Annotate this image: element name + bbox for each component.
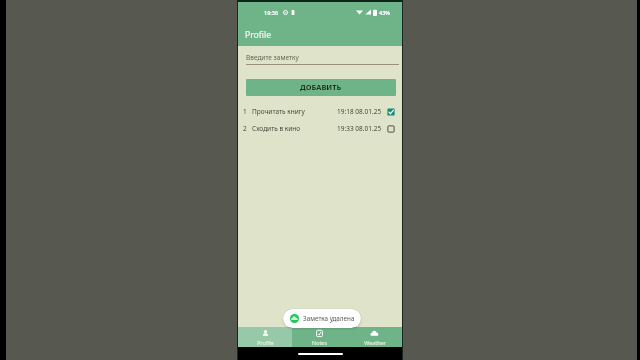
staticText: Weather: [364, 339, 386, 346]
button[interactable]: Заметка удалена: [290, 309, 361, 328]
button[interactable]: Введите заметку: [246, 53, 399, 65]
staticText: 19:18 08.01.25: [337, 107, 382, 116]
button[interactable]: ДОБАВИТЬ: [246, 79, 396, 96]
button[interactable]: Notes tab: [292, 327, 347, 347]
button[interactable]: 1: [243, 103, 396, 120]
button[interactable]: 2: [243, 120, 396, 137]
staticText: Notes: [312, 339, 327, 346]
staticText: Profile: [245, 29, 272, 41]
staticText: Введите заметку: [246, 53, 299, 62]
staticText: 43%: [379, 9, 390, 16]
staticText: 1: [243, 107, 247, 116]
button[interactable]: Weather tab: [347, 327, 402, 347]
staticText: 2: [243, 124, 247, 133]
staticText: Profile: [257, 339, 274, 346]
button[interactable]: Profile tab: [238, 327, 292, 347]
staticText: Прочитать книгу: [252, 107, 305, 116]
staticText: 19:33 08.01.25: [337, 124, 382, 133]
staticText: Сходить в кино: [252, 124, 301, 133]
staticText: Заметка удалена: [303, 314, 355, 323]
button[interactable]: Not done: [386, 124, 396, 134]
staticText: ДОБАВИТЬ: [300, 82, 342, 92]
button[interactable]: Done: [386, 107, 396, 117]
staticText: 19:36: [264, 9, 279, 16]
